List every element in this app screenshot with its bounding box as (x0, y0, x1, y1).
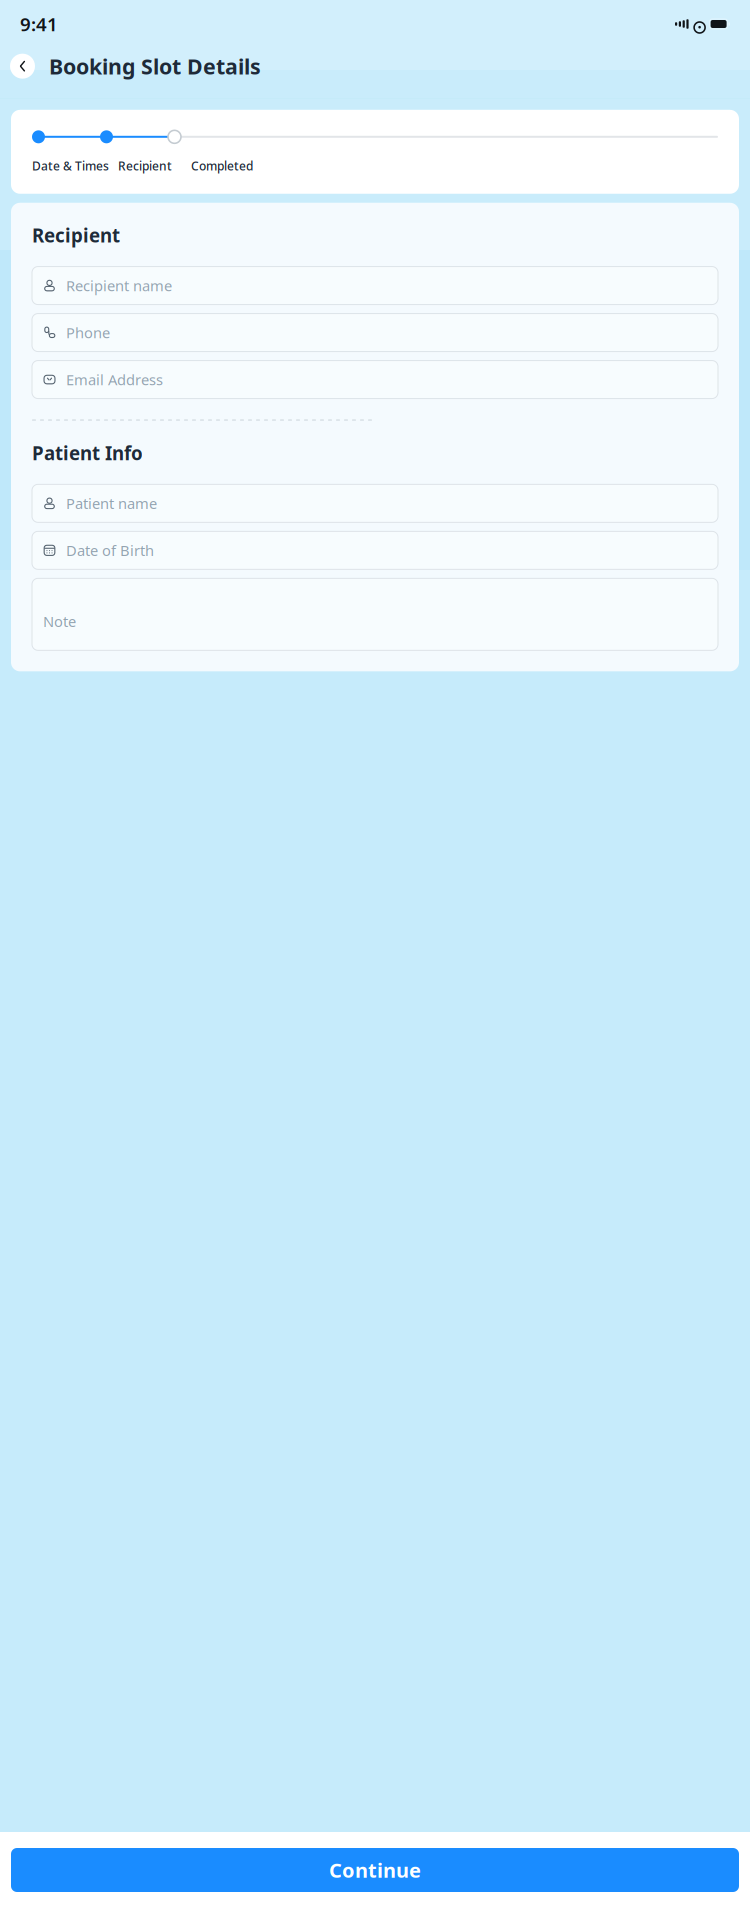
staticText: Date & Times (32, 158, 109, 174)
staticText: Phone (66, 323, 110, 342)
button[interactable]: Date of Birth (32, 531, 718, 569)
button[interactable]: Continue (11, 1848, 739, 1892)
staticText: Date of Birth (66, 541, 154, 560)
staticText: Completed (191, 158, 253, 174)
button[interactable]: Phone (32, 314, 718, 352)
staticText: Booking Slot Details (49, 52, 261, 80)
button[interactable]: Back (10, 54, 35, 79)
button[interactable]: Note (32, 578, 718, 650)
button[interactable]: Email Address (32, 361, 718, 399)
staticText: Patient Info (32, 441, 143, 465)
staticText: Patient name (66, 494, 157, 513)
staticText: 9:41 (20, 12, 58, 36)
staticText: Continue (329, 1857, 421, 1883)
staticText: Recipient (32, 223, 120, 248)
staticText: Email Address (66, 370, 163, 389)
button[interactable]: Patient name (32, 484, 718, 522)
staticText: Recipient name (66, 276, 172, 295)
staticText: Note (43, 612, 76, 631)
button[interactable]: Recipient name (32, 267, 718, 305)
staticText: Recipient (118, 158, 172, 174)
